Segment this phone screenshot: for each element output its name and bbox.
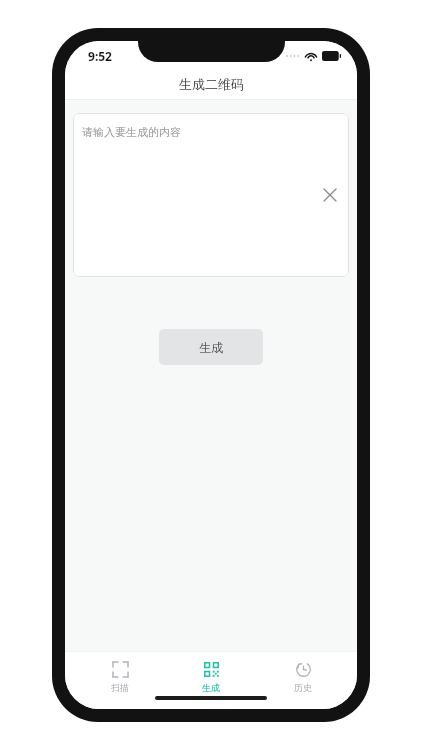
staticText: 历史 bbox=[294, 682, 312, 693]
button[interactable]: 扫描 bbox=[83, 658, 157, 695]
button[interactable]: 历史 bbox=[266, 658, 340, 695]
staticText: 生成 bbox=[202, 682, 220, 693]
button[interactable]: Clear text bbox=[317, 182, 343, 208]
button[interactable]: 请输入要生成的内容 bbox=[73, 113, 349, 277]
button[interactable]: 生成 bbox=[174, 658, 248, 695]
button[interactable]: 生成 bbox=[159, 329, 263, 365]
staticText: 生成 bbox=[199, 340, 223, 355]
staticText: 请输入要生成的内容 bbox=[82, 125, 181, 139]
staticText: 生成二维码 bbox=[179, 76, 244, 92]
staticText: 扫描 bbox=[111, 682, 129, 693]
staticText: 9:52 bbox=[88, 48, 112, 64]
